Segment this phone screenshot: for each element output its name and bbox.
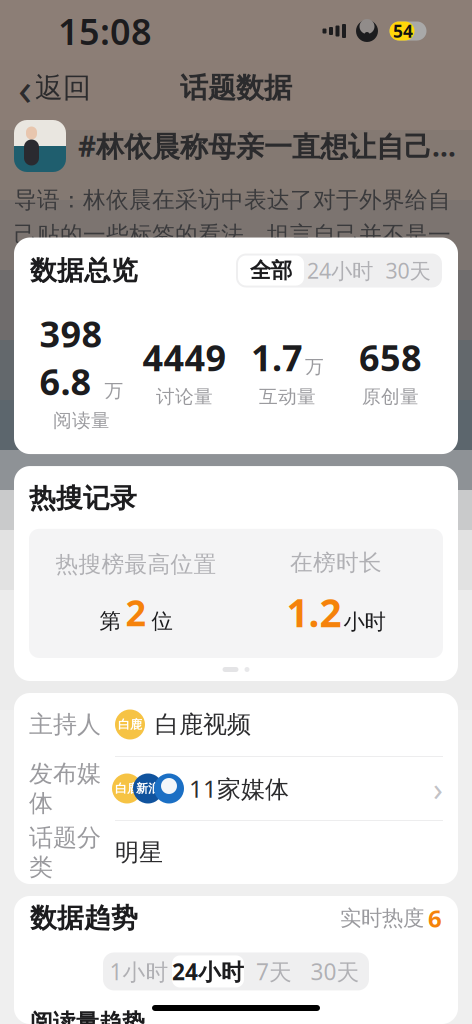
staticText: 万 [104, 379, 123, 402]
staticText: 导语：林依晨在采访中表达了对于外界给自己贴的一些标签的看法，坦言自己并不是一直待… [14, 186, 452, 395]
button[interactable]: 7天 [244, 955, 304, 987]
staticText: 30天 [385, 256, 430, 285]
staticText: 658 [359, 333, 422, 381]
staticText: 15:08 [58, 7, 152, 55]
staticText: 24小时 [172, 956, 244, 986]
staticText: 主持人 [29, 710, 101, 739]
staticText: › [433, 767, 443, 810]
button[interactable]: 全部 [238, 255, 304, 285]
staticText: 互动量 [259, 385, 316, 408]
staticText: 2 [125, 588, 146, 636]
staticText: 6 [428, 902, 442, 934]
button[interactable]: ‹ [8, 52, 101, 124]
staticText: 全部 [250, 257, 292, 284]
staticText: 数据趋势 [30, 902, 138, 934]
staticText: 1.2 [286, 587, 341, 638]
button[interactable]: 30天 [376, 255, 440, 285]
button[interactable]: 1小时 [106, 955, 172, 987]
staticText: 7天 [256, 956, 292, 986]
staticText: 54 [393, 19, 413, 42]
staticText: 小时 [343, 609, 385, 635]
staticText: 万 [305, 355, 324, 378]
staticText: 阅读量趋势 [30, 1008, 145, 1024]
staticText: 11家媒体 [189, 773, 289, 804]
staticText: 30天 [310, 956, 359, 986]
staticText: 热搜记录 [29, 482, 137, 515]
button[interactable]: 发布媒体 [29, 757, 443, 820]
staticText: 明星 [115, 838, 163, 867]
button[interactable]: 30天 [304, 955, 366, 987]
staticText: 1小时 [109, 956, 168, 986]
staticText: 在榜时长 [290, 549, 382, 577]
staticText: 白鹿 [115, 781, 139, 796]
staticText: 实时热度 [340, 905, 424, 931]
staticText: 位 [151, 608, 172, 634]
staticText: 话题分类 [29, 823, 101, 882]
staticText: 24小时 [307, 256, 373, 285]
staticText: 返回 [35, 71, 91, 105]
staticText: 3986.8 [39, 309, 102, 405]
staticText: ‹ [18, 58, 32, 118]
staticText: 话题数据 [180, 71, 292, 105]
button[interactable]: 24小时 [304, 255, 376, 285]
staticText: 新浪 [136, 781, 160, 796]
staticText: 数据总览 [30, 254, 138, 287]
staticText: 4449 [142, 333, 226, 381]
staticText: 第 [99, 608, 120, 634]
button[interactable]: 24小时 [172, 955, 244, 987]
staticText: 热搜榜最高位置 [55, 551, 216, 578]
staticText: 白鹿视频 [155, 710, 251, 739]
staticText: 讨论量 [156, 385, 213, 408]
staticText: #林依晨称母亲一直想让自己退出娱乐… [78, 127, 458, 165]
staticText: 发布媒体 [29, 759, 101, 818]
staticText: 原创量 [362, 385, 419, 408]
staticText: 白鹿 [118, 717, 142, 732]
staticText: 阅读量 [53, 409, 110, 432]
staticText: 1.7 [251, 333, 303, 381]
